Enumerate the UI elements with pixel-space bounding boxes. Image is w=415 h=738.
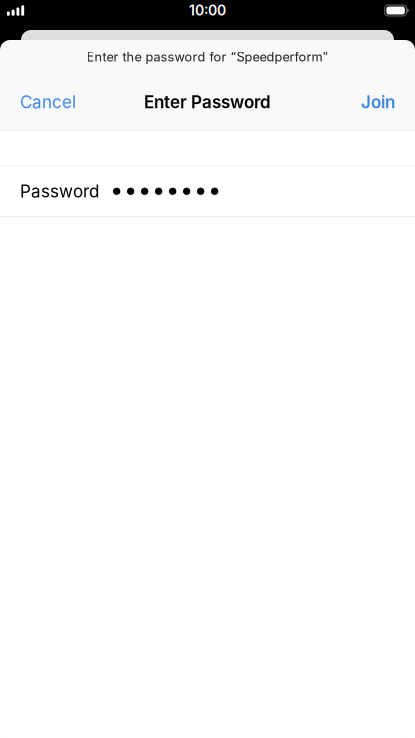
- button[interactable]: Password: [0, 166, 415, 216]
- staticText: Join: [361, 92, 395, 112]
- button[interactable]: Cancel: [0, 74, 92, 130]
- staticText: Password: [20, 181, 99, 202]
- staticText: Enter Password: [144, 92, 271, 112]
- staticText: Cancel: [20, 92, 76, 112]
- staticText: 10:00: [189, 2, 226, 19]
- button[interactable]: Join: [345, 74, 415, 130]
- staticText: Enter the password for “Speedperform”: [86, 49, 328, 65]
